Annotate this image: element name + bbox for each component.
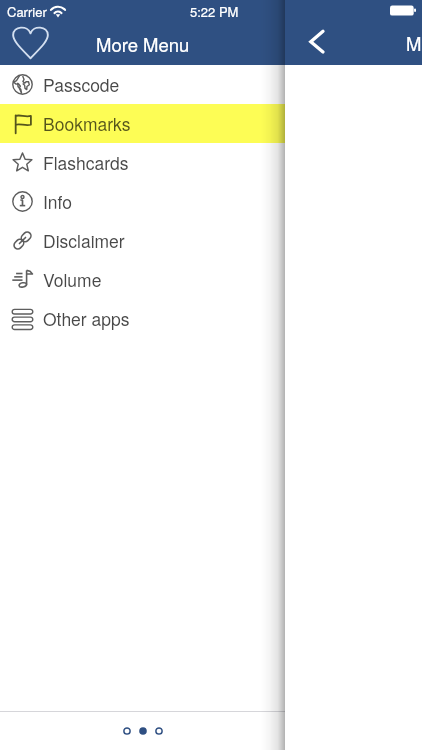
staticText: Info: [43, 189, 73, 214]
staticText: 5:22 PM: [190, 2, 239, 21]
staticText: Bookmarks: [43, 111, 131, 136]
staticText: Other apps: [43, 306, 130, 331]
staticText: More Menu: [96, 31, 190, 57]
staticText: Volume: [43, 267, 102, 292]
staticText: Passcode: [43, 72, 120, 97]
button[interactable]: Volume: [0, 260, 285, 299]
staticText: Main Menu: [406, 30, 422, 56]
button[interactable]: Info: [0, 182, 285, 221]
staticText: Carrier: [7, 2, 47, 21]
button[interactable]: Favourites: [11, 22, 50, 60]
button[interactable]: Bookmarks: [0, 104, 285, 143]
button[interactable]: Passcode: [0, 65, 285, 104]
button[interactable]: Back: [295, 20, 339, 64]
button[interactable]: Disclaimer: [0, 221, 285, 260]
button[interactable]: Flashcards: [0, 143, 285, 182]
staticText: Flashcards: [43, 150, 129, 175]
staticText: Disclaimer: [43, 228, 125, 253]
button[interactable]: Other apps: [0, 299, 285, 338]
